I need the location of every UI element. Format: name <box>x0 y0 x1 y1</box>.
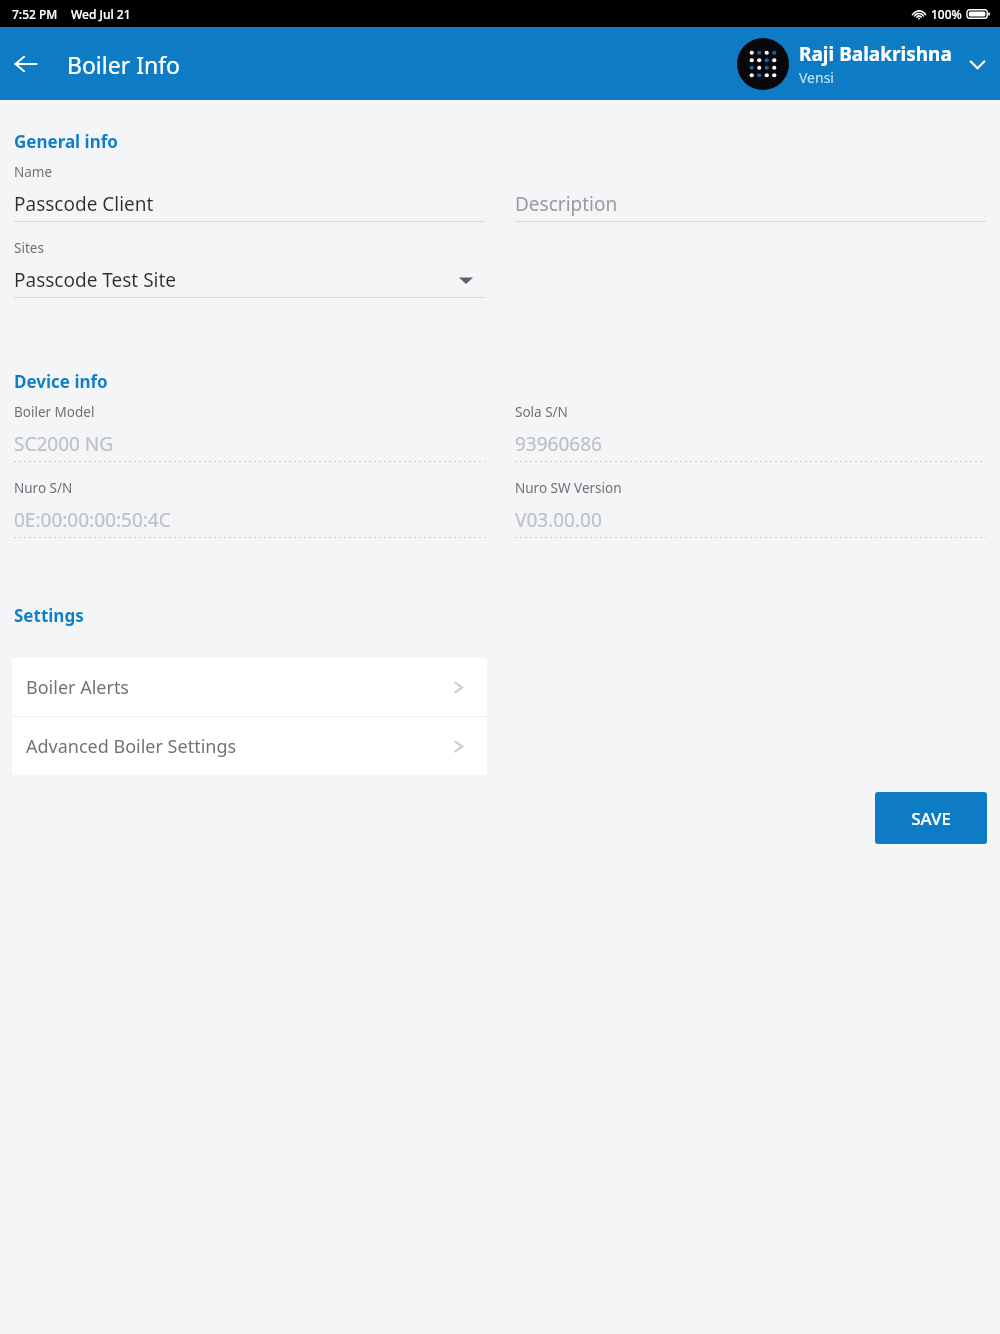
staticText: Device info <box>14 370 108 393</box>
staticText: 0E:00:00:00:50:4C <box>14 507 171 533</box>
staticText: Boiler Info <box>67 49 181 80</box>
staticText: SC2000 NG <box>14 431 114 457</box>
staticText: Wed Jul 21 <box>71 6 131 22</box>
staticText: General info <box>14 130 118 153</box>
staticText: Settings <box>14 604 84 627</box>
staticText: Passcode Client <box>14 191 154 217</box>
staticText: 100% <box>931 6 962 22</box>
staticText: SAVE <box>911 807 951 830</box>
button[interactable]: SAVE <box>875 792 987 844</box>
staticText: V03.00.00 <box>515 507 602 533</box>
staticText: Sola S/N <box>515 403 568 421</box>
staticText: Sites <box>14 239 44 257</box>
staticText: Nuro S/N <box>14 479 73 497</box>
button[interactable]: Advanced Boiler Settings <box>12 717 487 775</box>
staticText: Name <box>14 163 53 181</box>
staticText: Boiler Alerts <box>26 675 452 700</box>
staticText: Advanced Boiler Settings <box>26 734 452 759</box>
button[interactable]: Boiler Alerts <box>12 658 487 716</box>
staticText: Boiler Model <box>14 403 95 421</box>
staticText: Vensi <box>799 68 834 87</box>
staticText: Description <box>515 191 618 217</box>
staticText: Raji Balakrishna <box>799 41 952 67</box>
staticText: Passcode Test Site <box>14 267 177 293</box>
staticText: 7:52 PM <box>12 6 58 22</box>
button[interactable]: Raji Balakrishna <box>737 38 1000 90</box>
button[interactable]: Back <box>0 38 52 90</box>
other: Expand account menu <box>962 49 992 79</box>
staticText: 93960686 <box>515 431 602 457</box>
staticText: Nuro SW Version <box>515 479 622 497</box>
